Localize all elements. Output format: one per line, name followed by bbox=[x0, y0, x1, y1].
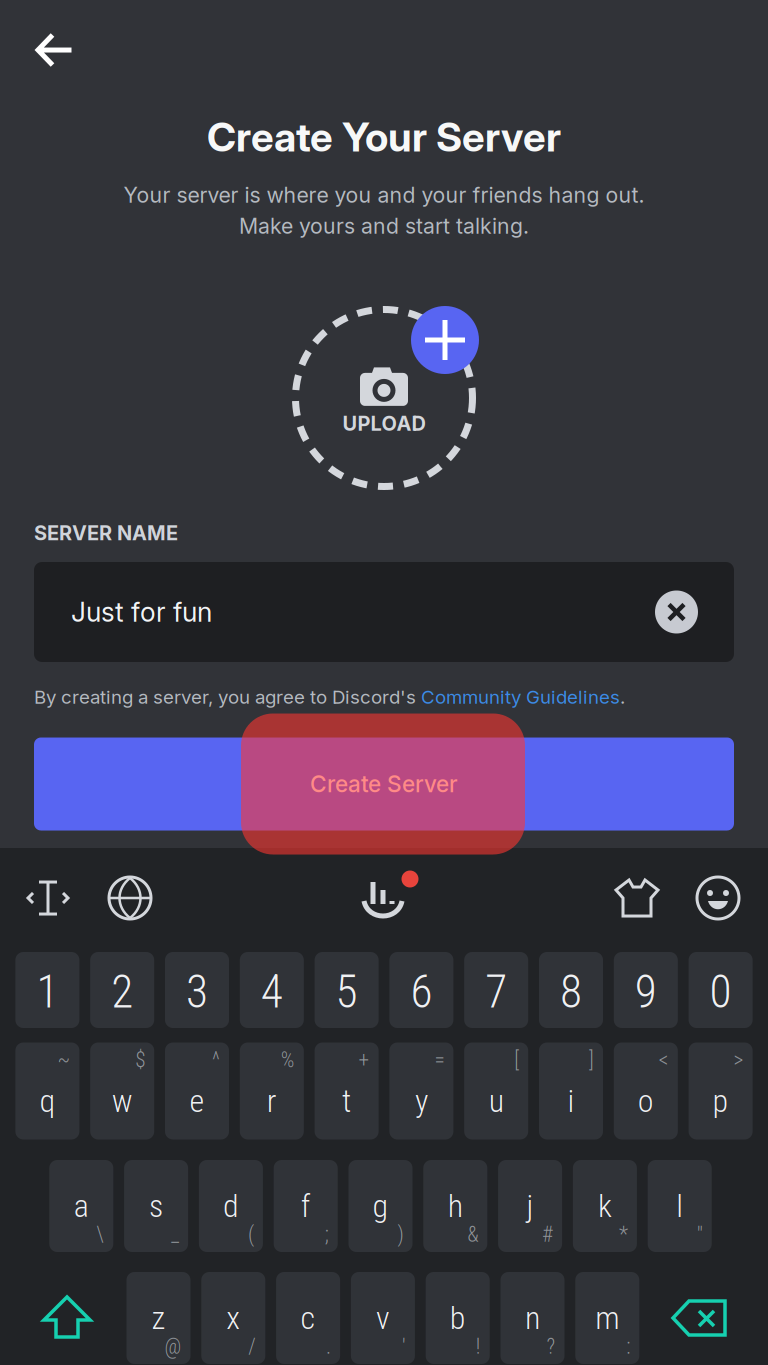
button[interactable]: a bbox=[49, 1160, 113, 1252]
button[interactable]: k bbox=[573, 1160, 637, 1252]
button[interactable]: j bbox=[498, 1160, 562, 1252]
staticText: 1 bbox=[36, 965, 58, 1018]
button[interactable]: Shift bbox=[14, 1272, 120, 1364]
staticText: Make yours and start talking. bbox=[239, 213, 529, 239]
button[interactable]: 1 bbox=[15, 952, 79, 1028]
staticText: [ bbox=[514, 1047, 519, 1072]
button[interactable]: Backspace bbox=[646, 1272, 752, 1364]
staticText: / bbox=[248, 1334, 256, 1359]
staticText: . bbox=[620, 686, 625, 708]
staticText: c bbox=[301, 1299, 316, 1337]
button[interactable]: x bbox=[201, 1272, 265, 1364]
staticText: = bbox=[434, 1047, 444, 1072]
button[interactable]: Create Server bbox=[34, 737, 734, 830]
button[interactable]: 5 bbox=[315, 952, 379, 1028]
button[interactable]: q bbox=[15, 1042, 79, 1139]
button[interactable]: y bbox=[389, 1042, 453, 1139]
staticText: t bbox=[342, 1082, 351, 1120]
button[interactable]: n bbox=[500, 1272, 564, 1364]
button[interactable]: Back bbox=[19, 14, 91, 86]
button[interactable]: Voice input bbox=[351, 866, 415, 930]
button[interactable]: s bbox=[124, 1160, 188, 1252]
staticText: ; bbox=[325, 1222, 329, 1247]
button[interactable]: 4 bbox=[240, 952, 304, 1028]
staticText: m bbox=[595, 1299, 619, 1337]
button[interactable]: 3 bbox=[165, 952, 229, 1028]
button[interactable]: Emoji bbox=[686, 866, 750, 930]
staticText: By creating a server, you agree to Disco… bbox=[34, 686, 421, 708]
staticText: e bbox=[189, 1082, 204, 1120]
staticText: 5 bbox=[336, 965, 358, 1018]
staticText: k bbox=[598, 1187, 612, 1225]
button[interactable]: Just for fun bbox=[34, 562, 734, 662]
staticText: ! bbox=[476, 1334, 481, 1359]
button[interactable]: d bbox=[199, 1160, 263, 1252]
button[interactable]: Change language bbox=[98, 866, 162, 930]
button[interactable]: m bbox=[575, 1272, 639, 1364]
staticText: r bbox=[267, 1082, 277, 1120]
staticText: 9 bbox=[635, 965, 657, 1018]
staticText: 2 bbox=[111, 965, 133, 1018]
button[interactable]: u bbox=[464, 1042, 528, 1139]
staticText: . bbox=[326, 1334, 331, 1359]
staticText: d bbox=[223, 1187, 239, 1225]
staticText: " bbox=[697, 1222, 703, 1247]
staticText: % bbox=[281, 1047, 295, 1072]
staticText: y bbox=[415, 1082, 428, 1120]
staticText: < bbox=[659, 1047, 669, 1072]
button[interactable]: c bbox=[276, 1272, 340, 1364]
staticText: a bbox=[74, 1187, 89, 1225]
button[interactable]: w bbox=[90, 1042, 154, 1139]
staticText: 7 bbox=[485, 965, 507, 1018]
staticText: ' bbox=[402, 1334, 406, 1359]
staticText: 0 bbox=[710, 965, 732, 1018]
staticText: \ bbox=[96, 1222, 104, 1247]
staticText: q bbox=[39, 1082, 55, 1120]
button[interactable]: o bbox=[614, 1042, 678, 1139]
button[interactable]: l bbox=[648, 1160, 712, 1252]
button[interactable]: i bbox=[539, 1042, 603, 1139]
button[interactable]: Text cursor bbox=[16, 866, 80, 930]
staticText: ) bbox=[397, 1222, 403, 1247]
staticText: Create Server bbox=[310, 770, 458, 798]
button[interactable]: 9 bbox=[614, 952, 678, 1028]
staticText: g bbox=[372, 1187, 388, 1225]
staticText: p bbox=[713, 1082, 729, 1120]
staticText: : bbox=[626, 1334, 630, 1359]
staticText: Community Guidelines bbox=[421, 686, 620, 708]
staticText: b bbox=[450, 1299, 466, 1337]
staticText: w bbox=[112, 1082, 133, 1120]
button[interactable]: b bbox=[426, 1272, 490, 1364]
button[interactable]: 6 bbox=[389, 952, 453, 1028]
staticText: 8 bbox=[560, 965, 582, 1018]
button[interactable]: v bbox=[351, 1272, 415, 1364]
staticText: x bbox=[226, 1299, 240, 1337]
button[interactable]: 8 bbox=[539, 952, 603, 1028]
staticText: ~ bbox=[57, 1047, 70, 1072]
button[interactable]: f bbox=[274, 1160, 338, 1252]
staticText: 6 bbox=[410, 965, 432, 1018]
button[interactable]: r bbox=[240, 1042, 304, 1139]
staticText: > bbox=[734, 1047, 744, 1072]
staticText: SERVER NAME bbox=[34, 521, 178, 545]
staticText: + bbox=[359, 1047, 370, 1072]
staticText: _ bbox=[171, 1222, 179, 1247]
button[interactable]: p bbox=[689, 1042, 753, 1139]
button[interactable]: e bbox=[165, 1042, 229, 1139]
staticText: u bbox=[489, 1082, 504, 1120]
button[interactable]: t bbox=[315, 1042, 379, 1139]
staticText: Your server is where you and your friend… bbox=[123, 182, 644, 208]
staticText: * bbox=[619, 1222, 628, 1247]
button[interactable]: h bbox=[423, 1160, 487, 1252]
staticText: @ bbox=[164, 1334, 181, 1359]
button[interactable]: 2 bbox=[90, 952, 154, 1028]
button[interactable]: 0 bbox=[689, 952, 753, 1028]
button[interactable]: 7 bbox=[464, 952, 528, 1028]
button[interactable]: z bbox=[126, 1272, 190, 1364]
button[interactable]: Stickers bbox=[605, 866, 669, 930]
button[interactable]: Community Guidelines bbox=[421, 686, 620, 708]
staticText: j bbox=[527, 1187, 534, 1225]
staticText: 3 bbox=[186, 965, 208, 1018]
button[interactable]: g bbox=[348, 1160, 412, 1252]
staticText: ? bbox=[546, 1334, 555, 1359]
